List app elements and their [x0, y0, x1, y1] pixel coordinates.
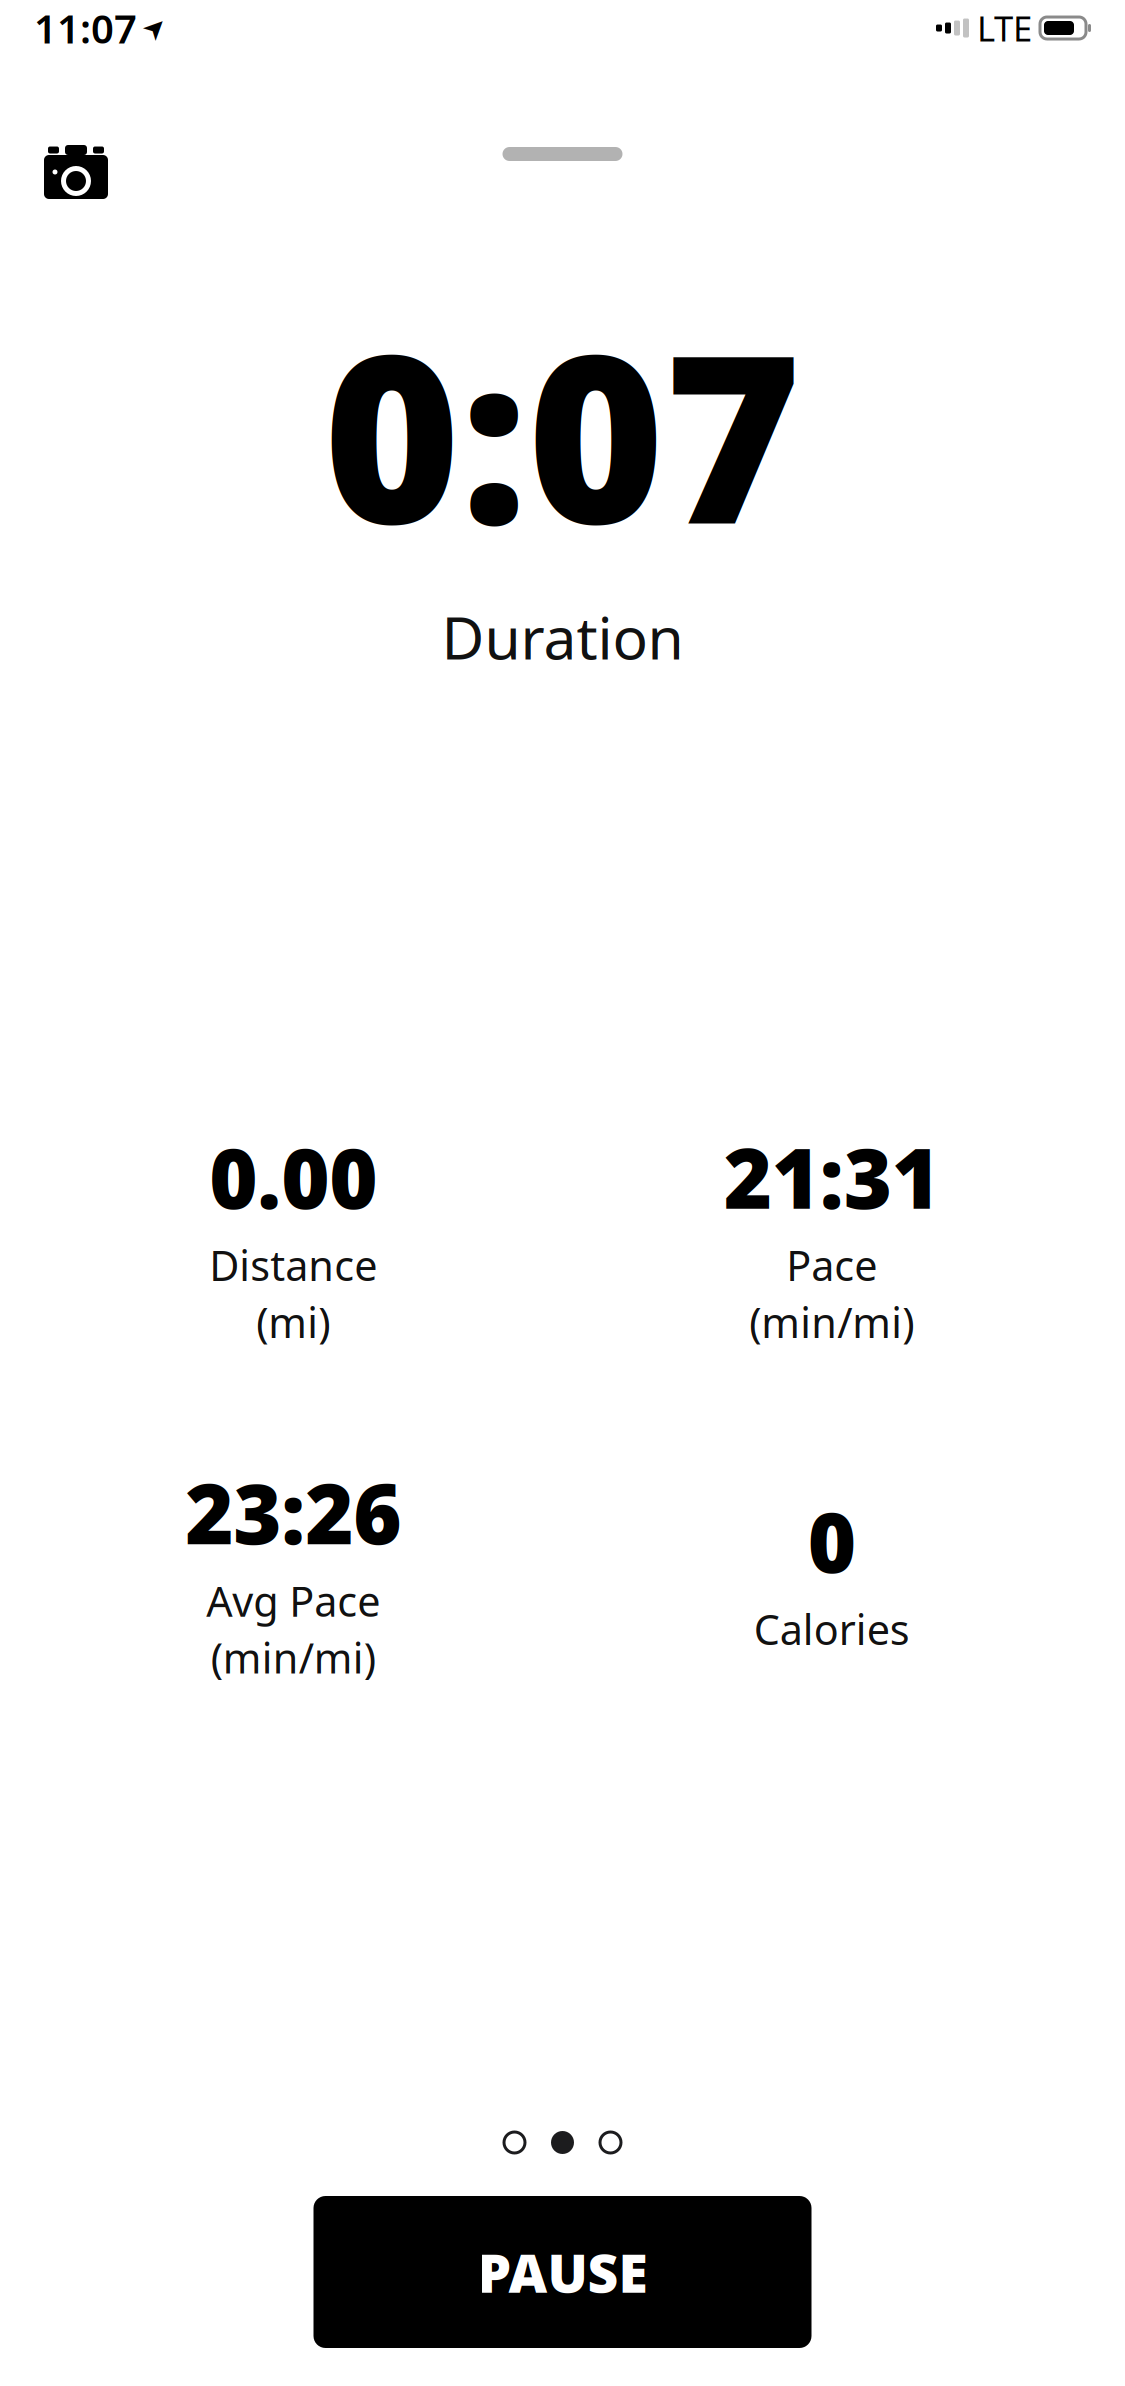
staticText: Avg Pace — [206, 1573, 380, 1628]
staticText: Pace — [786, 1238, 877, 1292]
staticText: LTE — [977, 5, 1032, 51]
staticText: 23:26 — [185, 1457, 401, 1567]
staticText: (min/mi) — [211, 1630, 376, 1685]
staticText: 0 — [808, 1486, 856, 1596]
staticText: 21:31 — [724, 1122, 940, 1232]
button[interactable]: Camera — [0, 133, 124, 211]
staticText: Duration — [441, 598, 683, 676]
staticText: (min/mi) — [749, 1294, 914, 1349]
staticText: PAUSE — [477, 2237, 647, 2307]
staticText: 11:07 — [34, 1, 137, 54]
button[interactable]: PAUSE — [313, 2196, 811, 2348]
staticText: Calories — [754, 1602, 910, 1656]
staticText: 0:07 — [323, 278, 801, 588]
staticText: 0.00 — [209, 1122, 377, 1232]
staticText: ➤ — [143, 12, 166, 44]
staticText: Distance — [209, 1238, 377, 1292]
staticText: (mi) — [256, 1294, 330, 1349]
